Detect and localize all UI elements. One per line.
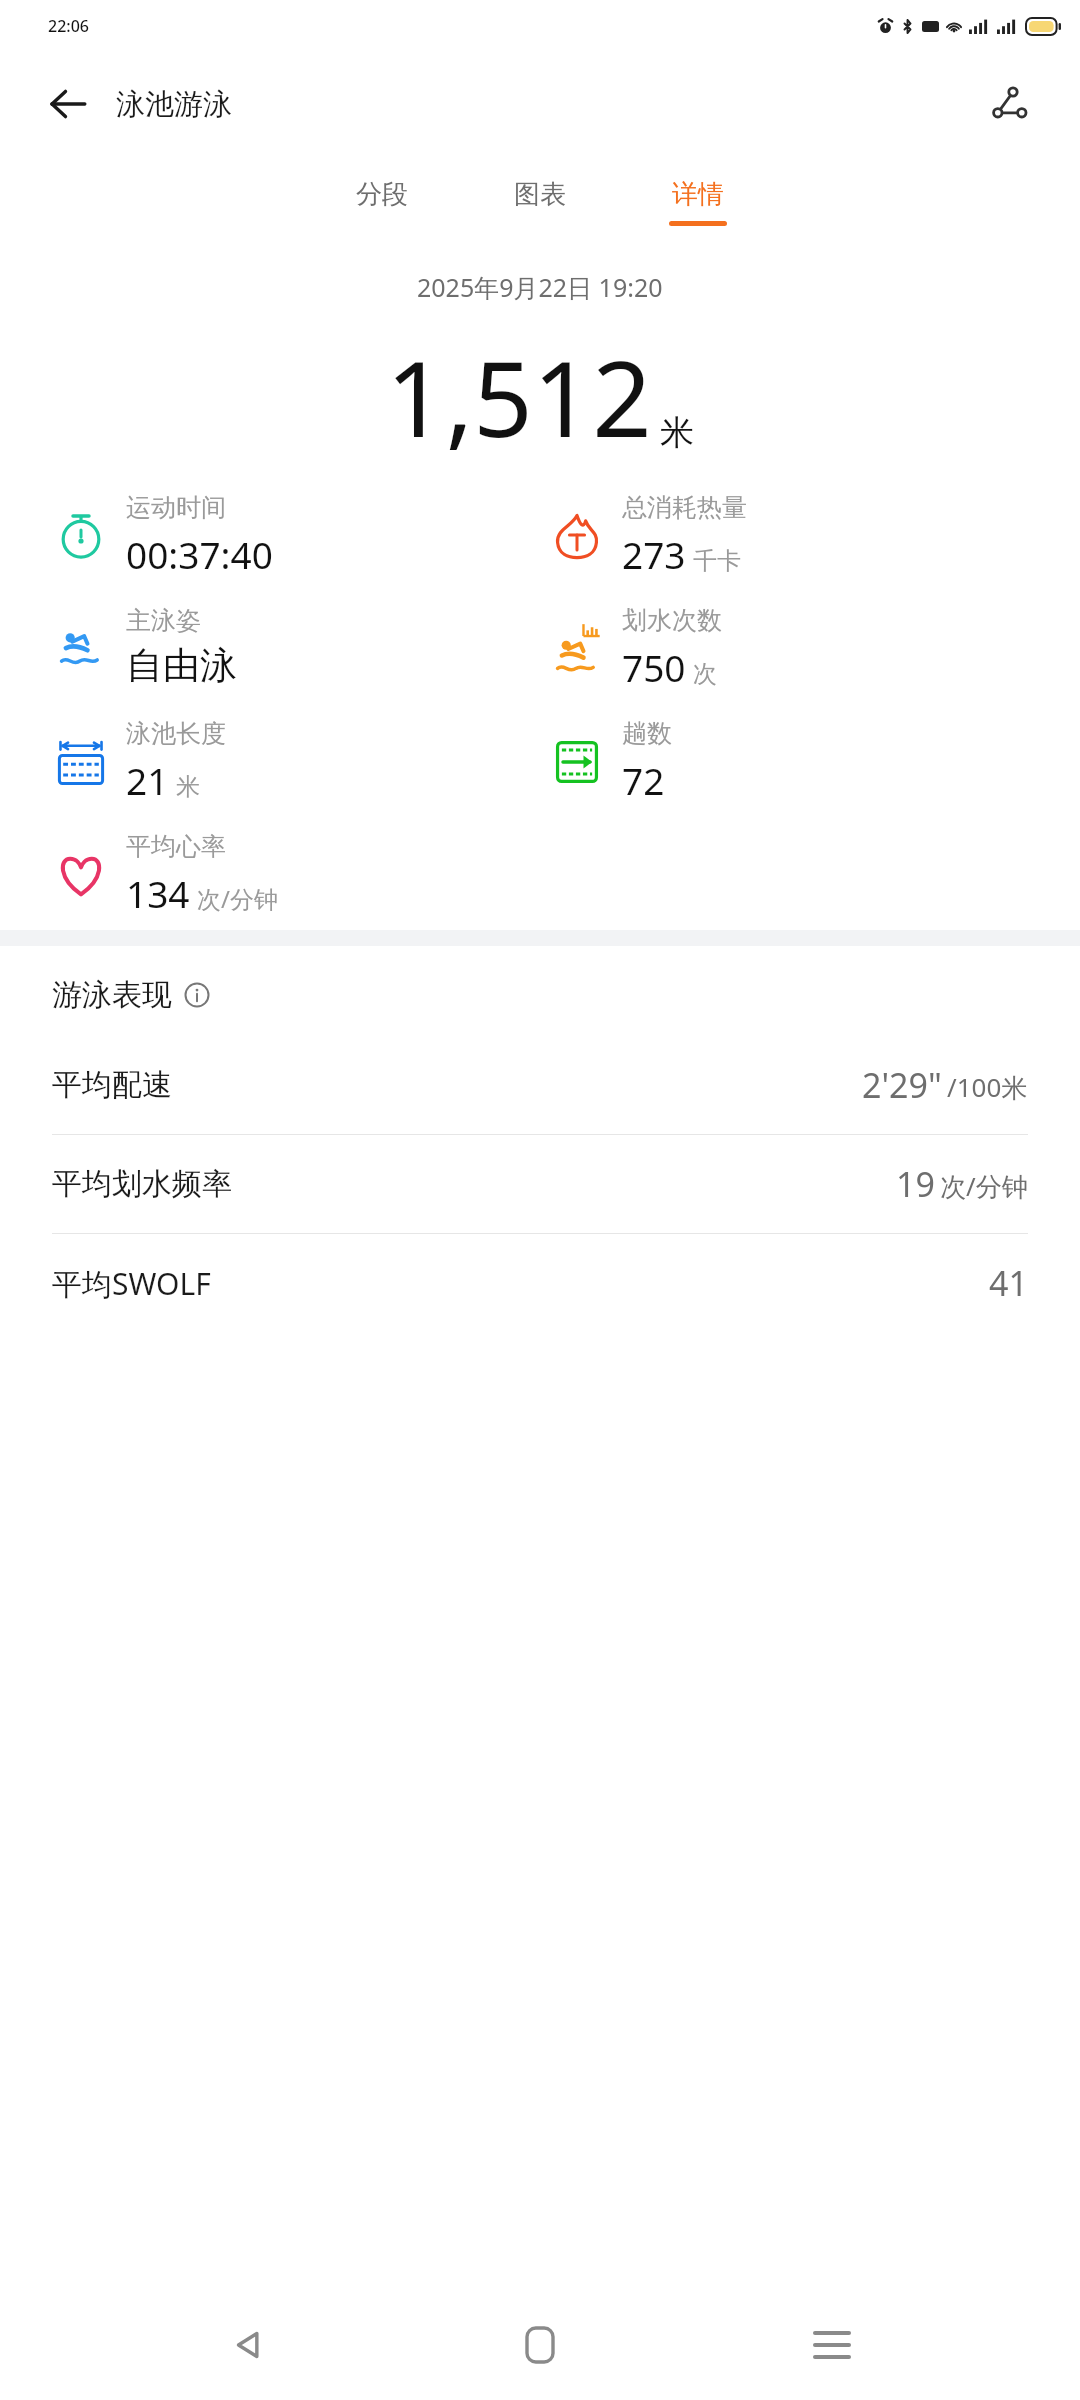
staticText: 千卡 [693, 546, 741, 576]
button[interactable]: 主泳姿 [54, 605, 237, 689]
staticText: 趟数 [622, 718, 672, 749]
staticText: 米 [176, 772, 200, 802]
button[interactable]: 分段 [345, 172, 419, 232]
staticText: 次 [693, 659, 717, 689]
button[interactable]: 运动时间 [54, 492, 273, 579]
button[interactable]: 平均SWOLF [0, 1234, 1080, 1332]
staticText: 详情 [672, 178, 724, 211]
staticText: 22:06 [48, 15, 89, 37]
button[interactable]: 划水次数 [550, 605, 722, 692]
staticText: 次/分钟 [940, 1168, 1028, 1204]
staticText: 米 [660, 411, 694, 454]
button[interactable]: 趟数 [550, 718, 672, 805]
button[interactable]: Share [978, 73, 1040, 135]
staticText: 平均SWOLF [52, 1263, 211, 1304]
staticText: 主泳姿 [126, 605, 201, 636]
button[interactable]: Back [40, 76, 96, 132]
staticText: 泳池长度 [126, 718, 226, 749]
staticText: 2'29" [862, 1062, 942, 1108]
button[interactable]: 平均心率 [54, 831, 278, 918]
button[interactable]: 图表 [503, 172, 577, 232]
staticText: 运动时间 [126, 492, 226, 523]
staticText: 19 [896, 1161, 935, 1207]
button[interactable]: 总消耗热量 [550, 492, 747, 579]
staticText: 平均心率 [126, 831, 226, 862]
staticText: 游泳表现 [52, 976, 172, 1014]
other: Info [184, 982, 210, 1008]
button[interactable]: Recents [788, 2301, 876, 2389]
staticText: 273 [622, 529, 686, 579]
button[interactable]: Home [496, 2301, 584, 2389]
staticText: 41 [989, 1260, 1028, 1306]
button[interactable]: Back [204, 2301, 292, 2389]
staticText: 自由泳 [126, 642, 237, 689]
staticText: 21 [126, 755, 169, 805]
staticText: 总消耗热量 [622, 492, 747, 523]
staticText: 划水次数 [622, 605, 722, 636]
staticText: 平均划水频率 [52, 1165, 232, 1203]
staticText: 134 [126, 868, 190, 918]
staticText: 00:37:40 [126, 529, 273, 579]
staticText: 图表 [514, 178, 566, 211]
staticText: 平均配速 [52, 1066, 172, 1104]
button[interactable]: 平均配速 [0, 1036, 1080, 1134]
button[interactable]: 泳池长度 [54, 718, 226, 805]
staticText: 72 [622, 755, 665, 805]
staticText: 分段 [356, 178, 408, 211]
staticText: /100米 [947, 1069, 1028, 1105]
staticText: 次/分钟 [197, 882, 278, 915]
button[interactable]: 游泳表现 [52, 976, 1080, 1014]
staticText: 750 [622, 642, 686, 692]
staticText: 2025年9月22日 19:20 [417, 270, 663, 304]
staticText: 1,512 [386, 326, 652, 468]
button[interactable]: 平均划水频率 [0, 1135, 1080, 1233]
staticText: 泳池游泳 [116, 86, 232, 123]
button[interactable]: 详情 [661, 172, 735, 232]
